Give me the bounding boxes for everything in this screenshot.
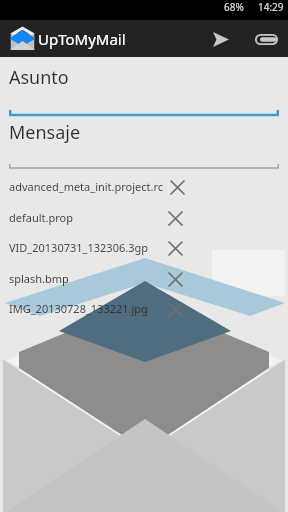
staticText: Asunto xyxy=(9,65,69,90)
button[interactable]: Send xyxy=(205,24,236,55)
button[interactable]: Remove attachment xyxy=(162,268,188,290)
button[interactable]: IMG_20130728_133221.jpg xyxy=(0,301,288,323)
staticText: Mensaje xyxy=(9,120,81,145)
staticText: splash.bmp xyxy=(9,271,69,286)
button[interactable]: Attach file xyxy=(248,24,285,55)
staticText: 14:29 xyxy=(258,0,284,14)
staticText: UpToMyMail xyxy=(38,29,126,49)
button[interactable]: default.prop xyxy=(0,210,288,232)
button[interactable]: Remove attachment xyxy=(162,207,188,229)
button[interactable]: Remove attachment xyxy=(162,298,188,320)
button[interactable]: Remove attachment xyxy=(164,176,190,198)
staticText: advanced_meta_init.project.rc xyxy=(9,179,164,194)
staticText: default.prop xyxy=(9,210,73,225)
staticText: IMG_20130728_133221.jpg xyxy=(9,301,148,316)
staticText: VID_20130731_132306.3gp xyxy=(9,240,148,255)
button[interactable]: Remove attachment xyxy=(162,237,188,259)
staticText: 68% xyxy=(224,0,244,14)
button[interactable]: VID_20130731_132306.3gp xyxy=(0,240,288,262)
button[interactable]: splash.bmp xyxy=(0,271,288,293)
button[interactable]: advanced_meta_init.project.rc xyxy=(0,179,288,201)
